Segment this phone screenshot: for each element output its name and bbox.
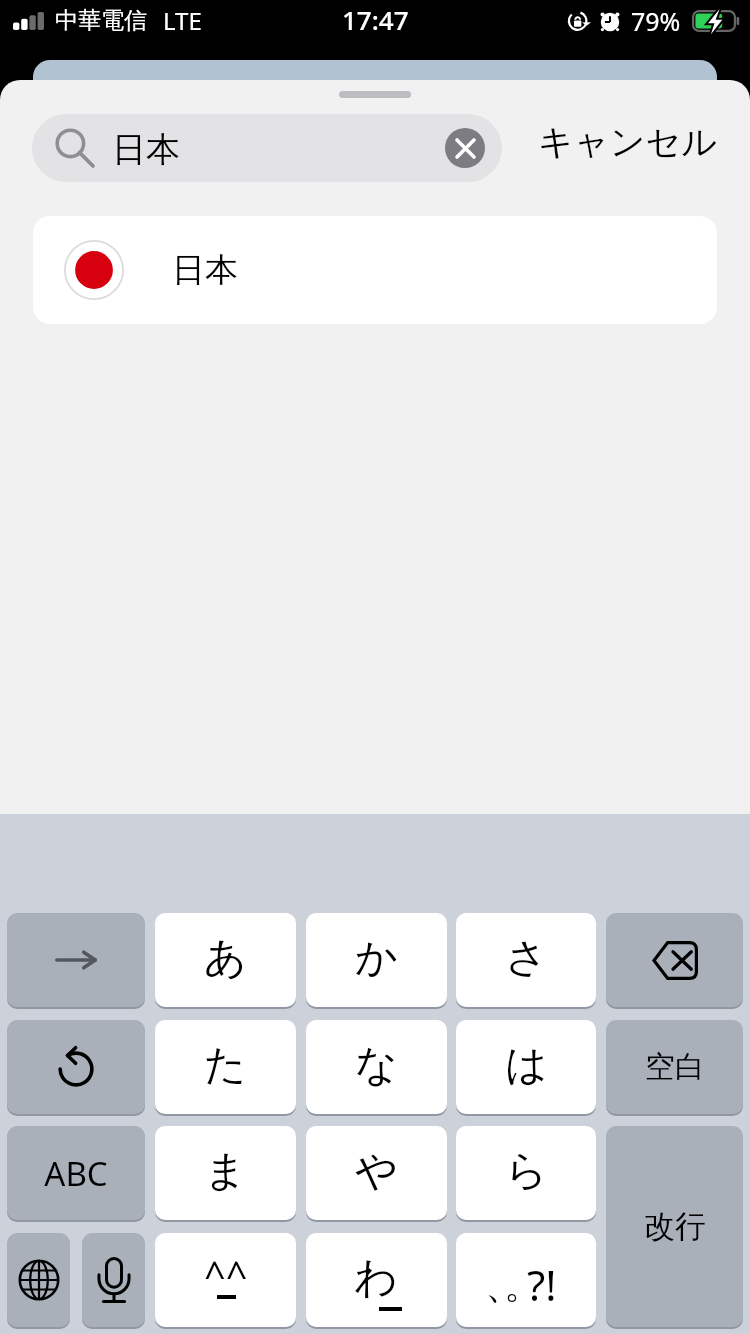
staticText: 17:47 <box>342 2 409 37</box>
staticText: 。 <box>504 1261 542 1309</box>
staticText: 中華電信 <box>55 6 147 35</box>
staticText: キャンセル <box>538 120 718 164</box>
staticText: や <box>355 1145 398 1198</box>
button[interactable]: か <box>306 913 447 1007</box>
button[interactable]: Dictation <box>82 1233 145 1327</box>
button[interactable]: 日本 <box>33 216 717 324</box>
button[interactable]: ら <box>456 1126 596 1220</box>
staticText: 79% <box>631 4 681 38</box>
button[interactable]: ^^ <box>155 1233 296 1327</box>
staticText: ま <box>204 1145 247 1198</box>
staticText: は <box>505 1039 548 1092</box>
button[interactable]: は <box>456 1020 596 1114</box>
button[interactable]: Undo <box>7 1020 145 1114</box>
button[interactable]: 空白 <box>606 1020 743 1114</box>
staticText: ^^ <box>204 1248 248 1300</box>
staticText: ABC <box>44 1151 108 1196</box>
button[interactable]: あ <box>155 913 296 1007</box>
button[interactable]: ABC <box>7 1126 145 1220</box>
button[interactable]: 日本 <box>32 114 502 182</box>
button[interactable]: Next candidate <box>7 913 145 1007</box>
button[interactable]: な <box>306 1020 447 1114</box>
staticText: 、 <box>485 1261 523 1309</box>
button[interactable]: わ <box>306 1233 447 1327</box>
button[interactable]: キャンセル <box>538 108 718 176</box>
staticText: 改行 <box>644 1207 706 1246</box>
staticText: 日本 <box>112 128 180 171</box>
staticText: 日本 <box>172 249 238 291</box>
button[interactable]: Change keyboard <box>7 1233 70 1327</box>
button[interactable]: 、 <box>456 1233 596 1327</box>
button[interactable]: や <box>306 1126 447 1220</box>
staticText: LTE <box>163 4 202 37</box>
button[interactable]: た <box>155 1020 296 1114</box>
button[interactable]: さ <box>456 913 596 1007</box>
staticText: た <box>204 1039 247 1092</box>
staticText: ?! <box>527 1256 557 1313</box>
button[interactable]: Clear text <box>445 128 485 168</box>
staticText: あ <box>204 932 247 985</box>
staticText: 空白 <box>645 1048 705 1086</box>
staticText: わ <box>354 1251 399 1305</box>
button[interactable]: 改行 <box>606 1126 743 1327</box>
staticText: さ <box>505 932 548 985</box>
button[interactable]: ま <box>155 1126 296 1220</box>
staticText: ら <box>505 1145 548 1198</box>
staticText: な <box>355 1039 398 1092</box>
button[interactable]: Backspace <box>606 913 743 1007</box>
staticText: か <box>355 932 398 985</box>
